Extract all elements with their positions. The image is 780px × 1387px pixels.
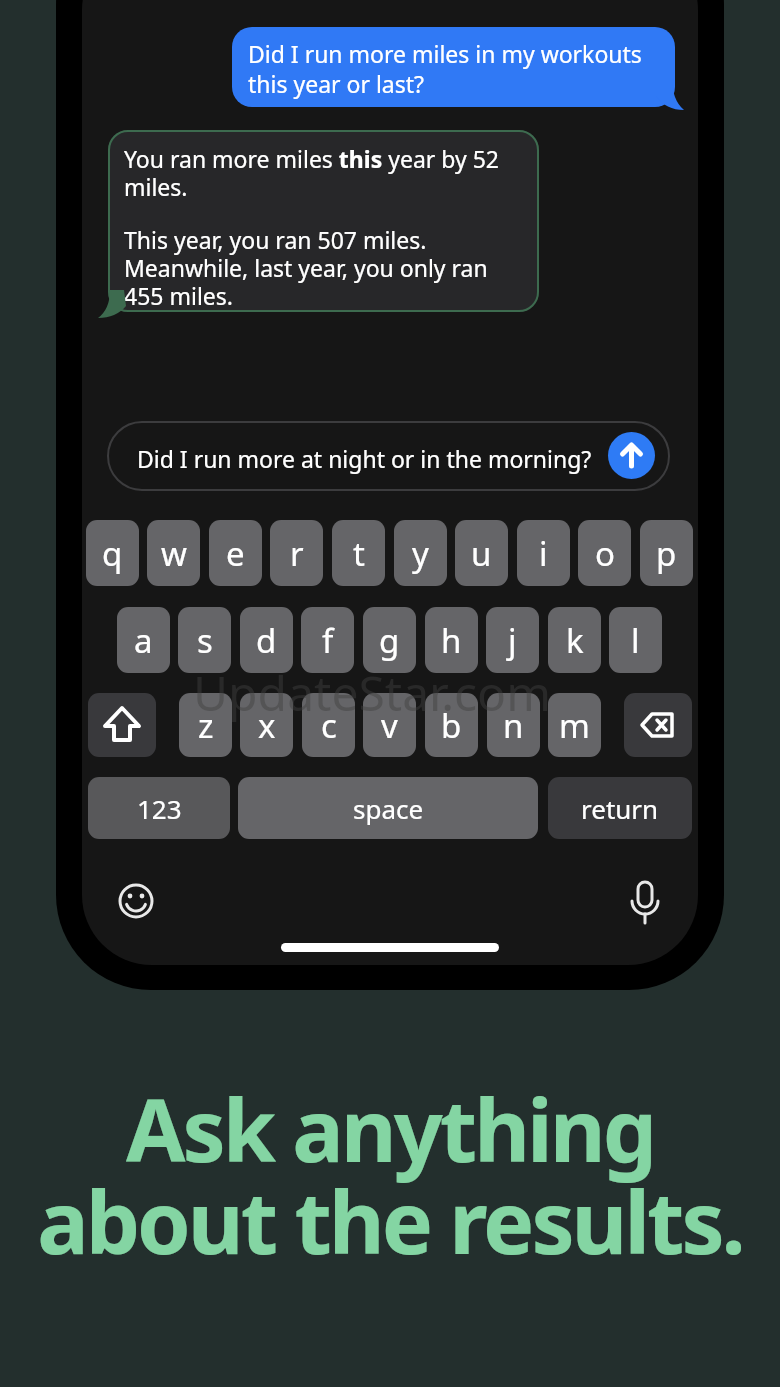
button[interactable]: u [455, 520, 508, 586]
staticText: d [256, 618, 277, 663]
button[interactable]: s [178, 607, 231, 673]
staticText: space [353, 791, 424, 826]
button[interactable]: w [147, 520, 200, 586]
staticText: Ask anything about the results. [0, 1070, 780, 1279]
button[interactable]: q [86, 520, 139, 586]
button[interactable]: r [270, 520, 323, 586]
staticText: s [197, 618, 213, 663]
staticText: Did I run more miles in my workouts this… [248, 38, 642, 99]
staticText: Did I run more at night or in the mornin… [137, 443, 592, 474]
button[interactable]: c [302, 693, 355, 757]
staticText: l [631, 618, 640, 663]
staticText: k [566, 618, 584, 663]
button[interactable]: p [640, 520, 693, 586]
button[interactable]: a [117, 607, 170, 673]
staticText: p [656, 531, 677, 576]
staticText: t [353, 531, 365, 576]
staticText: i [539, 531, 548, 576]
staticText: This year, you ran 507 miles. Meanwhile,… [124, 224, 488, 312]
button[interactable]: x [240, 693, 293, 757]
staticText: w [161, 531, 187, 576]
staticText: y [412, 531, 429, 576]
staticText: r [290, 531, 304, 576]
button[interactable]: n [487, 693, 540, 757]
staticText: n [503, 703, 524, 748]
button[interactable]: return [548, 777, 692, 839]
staticText: g [379, 618, 400, 663]
staticText: You ran more miles this year by 52 miles… [124, 143, 499, 203]
staticText: c [321, 703, 337, 748]
button[interactable]: m [548, 693, 601, 757]
staticText: m [559, 703, 590, 748]
button[interactable]: y [394, 520, 447, 586]
button[interactable]: k [548, 607, 601, 673]
staticText: q [102, 531, 123, 576]
button[interactable]: h [425, 607, 478, 673]
staticText: return [581, 791, 659, 826]
staticText: j [508, 618, 517, 663]
staticText: h [441, 618, 462, 663]
button[interactable]: l [609, 607, 662, 673]
button[interactable]: d [240, 607, 293, 673]
button[interactable]: j [486, 607, 539, 673]
button[interactable]: You ran more miles this year by 52 miles… [108, 130, 539, 312]
staticText: e [226, 531, 245, 576]
button[interactable]: i [517, 520, 570, 586]
staticText: f [322, 618, 334, 663]
staticText: x [258, 703, 276, 748]
button[interactable]: z [179, 693, 232, 757]
button[interactable] [627, 880, 663, 926]
button[interactable]: g [363, 607, 416, 673]
staticText: 123 [137, 791, 182, 826]
button[interactable]: v [363, 693, 416, 757]
button[interactable]: t [332, 520, 385, 586]
staticText: UpdateStar.com [193, 660, 552, 725]
button[interactable]: b [425, 693, 478, 757]
staticText: o [595, 531, 615, 576]
staticText: a [134, 618, 153, 663]
button[interactable] [88, 693, 156, 757]
staticText: z [198, 703, 214, 748]
button[interactable]: e [209, 520, 262, 586]
button[interactable]: Did I run more at night or in the mornin… [107, 421, 670, 491]
button[interactable]: Did I run more miles in my workouts this… [232, 27, 675, 107]
button[interactable]: 123 [88, 777, 230, 839]
staticText: b [441, 703, 462, 748]
button[interactable] [624, 693, 692, 757]
staticText: v [381, 703, 398, 748]
button[interactable]: f [301, 607, 354, 673]
button[interactable] [118, 883, 154, 919]
button[interactable]: o [578, 520, 631, 586]
button[interactable] [608, 432, 655, 479]
staticText: u [471, 531, 492, 576]
button[interactable]: space [238, 777, 538, 839]
